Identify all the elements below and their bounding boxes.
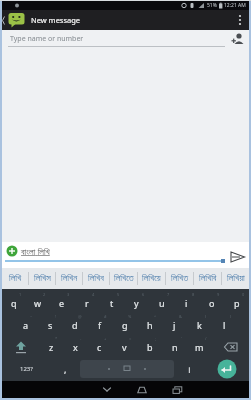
button[interactable]: h — [137, 314, 162, 336]
staticText: w — [34, 297, 42, 309]
staticText: i — [185, 297, 188, 309]
staticText: % — [128, 314, 132, 319]
button[interactable]: k — [187, 314, 212, 336]
button[interactable]: Type name or number — [2, 30, 249, 53]
button[interactable] — [230, 251, 246, 263]
staticText: লিখি — [9, 274, 22, 283]
button[interactable]: New message — [2, 10, 249, 30]
button[interactable]: । — [174, 358, 204, 380]
button[interactable] — [6, 245, 18, 257]
staticText: s — [48, 319, 53, 331]
button[interactable]: লিখিতে — [110, 268, 137, 289]
button[interactable] — [137, 386, 147, 394]
staticText: j — [173, 319, 176, 331]
button[interactable] — [172, 386, 183, 394]
button[interactable]: m — [187, 336, 212, 358]
staticText: / — [205, 336, 207, 341]
staticText: , — [64, 363, 67, 375]
button[interactable] — [2, 336, 39, 358]
staticText: 12:21 AM — [224, 2, 246, 9]
button[interactable]: লিখি — [2, 268, 28, 289]
button[interactable]: f — [87, 314, 112, 336]
button[interactable]: y — [124, 292, 149, 314]
staticText: লিখিব — [88, 274, 104, 283]
button[interactable]: j — [162, 314, 187, 336]
staticText: o — [209, 297, 215, 309]
button[interactable] — [238, 14, 242, 26]
staticText: 2 — [43, 292, 46, 297]
button[interactable]: q — [2, 292, 26, 314]
staticText: 7 — [167, 292, 170, 297]
button[interactable]: g — [112, 314, 137, 336]
button[interactable]: , — [50, 358, 80, 380]
staticText: # — [104, 314, 107, 319]
button[interactable]: i — [174, 292, 199, 314]
staticText: 3 — [67, 292, 70, 297]
staticText: q — [11, 297, 17, 309]
button[interactable]: s — [38, 314, 62, 336]
button[interactable]: n — [162, 336, 187, 358]
staticText: m — [195, 341, 204, 353]
button[interactable]: t — [99, 292, 124, 314]
button[interactable]: লিখিত — [166, 268, 193, 289]
staticText: 1 — [19, 292, 22, 297]
staticText: = — [129, 336, 132, 341]
staticText: t — [110, 297, 114, 309]
button[interactable]: v — [112, 336, 137, 358]
staticText: l — [223, 319, 226, 331]
button[interactable]: r — [74, 292, 99, 314]
button[interactable]: u — [149, 292, 174, 314]
staticText: x — [73, 341, 78, 353]
button[interactable] — [102, 386, 112, 393]
staticText: f — [98, 319, 102, 331]
staticText: r — [85, 297, 89, 309]
button[interactable]: l — [212, 314, 237, 336]
staticText: 123? — [20, 365, 33, 373]
staticText: 51% — [207, 2, 217, 9]
staticText: c — [97, 341, 102, 353]
staticText: 5 — [117, 292, 120, 297]
button[interactable]: b — [137, 336, 162, 358]
button[interactable]: c — [87, 336, 112, 358]
button[interactable] — [204, 358, 249, 380]
button[interactable]: p — [224, 292, 249, 314]
staticText: 4 — [92, 292, 95, 297]
staticText: 0 — [242, 292, 245, 297]
button[interactable]: d — [62, 314, 87, 336]
staticText: লিখিয়ে — [142, 274, 161, 283]
staticText: New message — [31, 15, 81, 25]
button[interactable]: x — [63, 336, 87, 358]
staticText: - — [80, 336, 82, 341]
staticText: u — [159, 297, 165, 309]
staticText: n — [172, 341, 178, 353]
staticText: g — [122, 319, 128, 331]
button[interactable]: e — [50, 292, 74, 314]
button[interactable]: লিখিন — [56, 268, 82, 289]
staticText: y — [134, 297, 139, 309]
button[interactable]: z — [39, 336, 63, 358]
button[interactable]: 123? — [2, 358, 50, 380]
button[interactable]: o — [199, 292, 224, 314]
button[interactable]: লিখিব — [83, 268, 109, 289]
staticText: @ — [78, 314, 82, 319]
button[interactable]: a — [14, 314, 38, 336]
staticText: * — [55, 336, 58, 341]
staticText: d — [72, 319, 78, 331]
button[interactable] — [230, 32, 246, 46]
button[interactable] — [212, 336, 249, 358]
staticText: a — [23, 319, 29, 331]
staticText: ~ — [30, 314, 33, 319]
staticText: b — [147, 341, 153, 353]
button[interactable] — [80, 360, 174, 378]
button[interactable]: লিখিয়ে — [138, 268, 165, 289]
button[interactable]: w — [26, 292, 50, 314]
staticText: Type name or number — [10, 34, 84, 44]
staticText: z — [49, 341, 54, 353]
button[interactable]: লিখিবি — [194, 268, 221, 289]
staticText: & — [179, 314, 182, 319]
button[interactable]: লিখিয়া — [222, 268, 249, 289]
staticText: লিখিবি — [199, 274, 217, 283]
staticText: ) — [230, 314, 232, 319]
button[interactable]: লিখিস — [29, 268, 55, 289]
staticText: e — [59, 297, 65, 309]
